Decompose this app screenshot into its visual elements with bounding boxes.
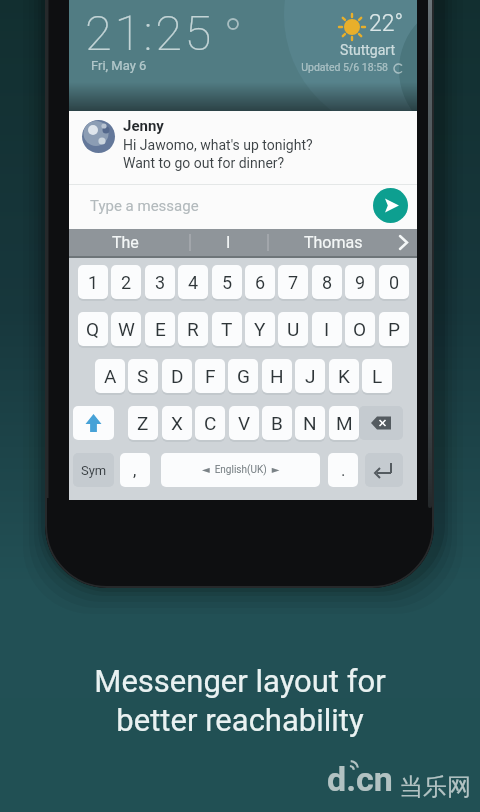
staticText: R: [187, 318, 199, 340]
staticText: 2: [121, 272, 132, 293]
staticText: Fri, May 6: [91, 58, 147, 73]
button[interactable]: P: [379, 312, 409, 346]
staticText: U: [287, 318, 300, 340]
button[interactable]: E: [145, 312, 175, 346]
button[interactable]: O: [345, 312, 375, 346]
button[interactable]: 4: [178, 265, 208, 299]
staticText: S: [137, 365, 149, 387]
staticText: N: [303, 412, 317, 434]
button[interactable]: Sym: [73, 453, 114, 487]
button[interactable]: L: [362, 359, 392, 393]
button[interactable]: 5: [212, 265, 242, 299]
staticText: Y: [254, 318, 266, 340]
button[interactable]: I: [198, 229, 258, 256]
staticText: E: [155, 318, 166, 340]
staticText: 8: [322, 272, 333, 293]
button[interactable]: N: [295, 406, 325, 440]
button[interactable]: U: [278, 312, 308, 346]
button[interactable]: T: [212, 312, 242, 346]
staticText: 5: [222, 272, 233, 293]
staticText: 6: [255, 272, 266, 293]
staticText: V: [238, 412, 251, 434]
staticText: C: [204, 412, 217, 434]
button[interactable]: F: [195, 359, 225, 393]
staticText: G: [237, 365, 250, 387]
staticText: 7: [288, 272, 299, 293]
staticText: F: [205, 365, 216, 387]
staticText: P: [388, 318, 400, 340]
staticText: Stuttgart: [69, 42, 395, 58]
staticText: ,: [133, 460, 137, 480]
staticText: 4: [188, 272, 199, 293]
button[interactable]: G: [228, 359, 258, 393]
button[interactable]: The: [95, 229, 155, 256]
button[interactable]: 0: [379, 265, 409, 299]
button[interactable]: Q: [78, 312, 108, 346]
button[interactable]: K: [329, 359, 359, 393]
staticText: L: [372, 365, 383, 387]
button[interactable]: H: [262, 359, 292, 393]
staticText: Messenger layout for better reachability: [0, 663, 480, 739]
button[interactable]: 3: [145, 265, 175, 299]
staticText: Q: [86, 318, 100, 340]
staticText: Jenny: [123, 117, 164, 135]
staticText: ◄ English(UK) ►: [202, 464, 280, 476]
staticText: T: [221, 318, 233, 340]
button[interactable]: [373, 188, 408, 223]
button[interactable]: 9: [345, 265, 375, 299]
button[interactable]: 7: [278, 265, 308, 299]
button[interactable]: .: [328, 453, 358, 487]
staticText: 9: [355, 272, 366, 293]
button[interactable]: V: [229, 406, 259, 440]
button[interactable]: D: [162, 359, 192, 393]
button[interactable]: 2: [111, 265, 141, 299]
button[interactable]: Thomas: [303, 229, 363, 256]
button[interactable]: C: [195, 406, 225, 440]
button[interactable]: Y: [245, 312, 275, 346]
button[interactable]: M: [329, 406, 359, 440]
button[interactable]: [359, 406, 403, 440]
staticText: 21:25: [85, 5, 214, 62]
button[interactable]: B: [262, 406, 292, 440]
button[interactable]: Jenny: [69, 111, 417, 229]
staticText: The: [112, 233, 139, 252]
staticText: W: [118, 318, 135, 340]
staticText: .: [341, 460, 346, 480]
staticText: J: [305, 365, 316, 387]
staticText: Z: [137, 412, 149, 434]
staticText: Sym: [81, 463, 107, 478]
button[interactable]: 1: [78, 265, 108, 299]
button[interactable]: S: [128, 359, 158, 393]
button[interactable]: Z: [128, 406, 158, 440]
button[interactable]: 8: [312, 265, 342, 299]
staticText: I: [324, 318, 330, 340]
button[interactable]: ◄ English(UK) ►: [161, 453, 320, 487]
staticText: d.cn: [327, 759, 393, 799]
staticText: K: [338, 365, 350, 387]
staticText: O: [353, 318, 367, 340]
staticText: 0: [389, 272, 400, 293]
staticText: M: [336, 412, 353, 434]
staticText: B: [271, 412, 283, 434]
staticText: 当乐网: [399, 772, 471, 802]
staticText: D: [171, 365, 184, 387]
button[interactable]: [365, 453, 403, 487]
button[interactable]: 6: [245, 265, 275, 299]
button[interactable]: Type a message: [90, 197, 199, 215]
button[interactable]: ,: [120, 453, 150, 487]
staticText: Updated 5/6 18:58: [69, 61, 388, 73]
staticText: I: [226, 233, 231, 252]
button[interactable]: W: [111, 312, 141, 346]
button[interactable]: A: [95, 359, 125, 393]
staticText: X: [171, 412, 183, 434]
staticText: 22°: [369, 10, 404, 37]
button[interactable]: J: [295, 359, 325, 393]
staticText: 3: [155, 272, 166, 293]
button[interactable]: [73, 406, 114, 440]
button[interactable]: R: [178, 312, 208, 346]
button[interactable]: I: [312, 312, 342, 346]
staticText: 1: [88, 272, 99, 293]
staticText: Thomas: [304, 233, 363, 252]
button[interactable]: X: [162, 406, 192, 440]
staticText: A: [104, 365, 117, 387]
